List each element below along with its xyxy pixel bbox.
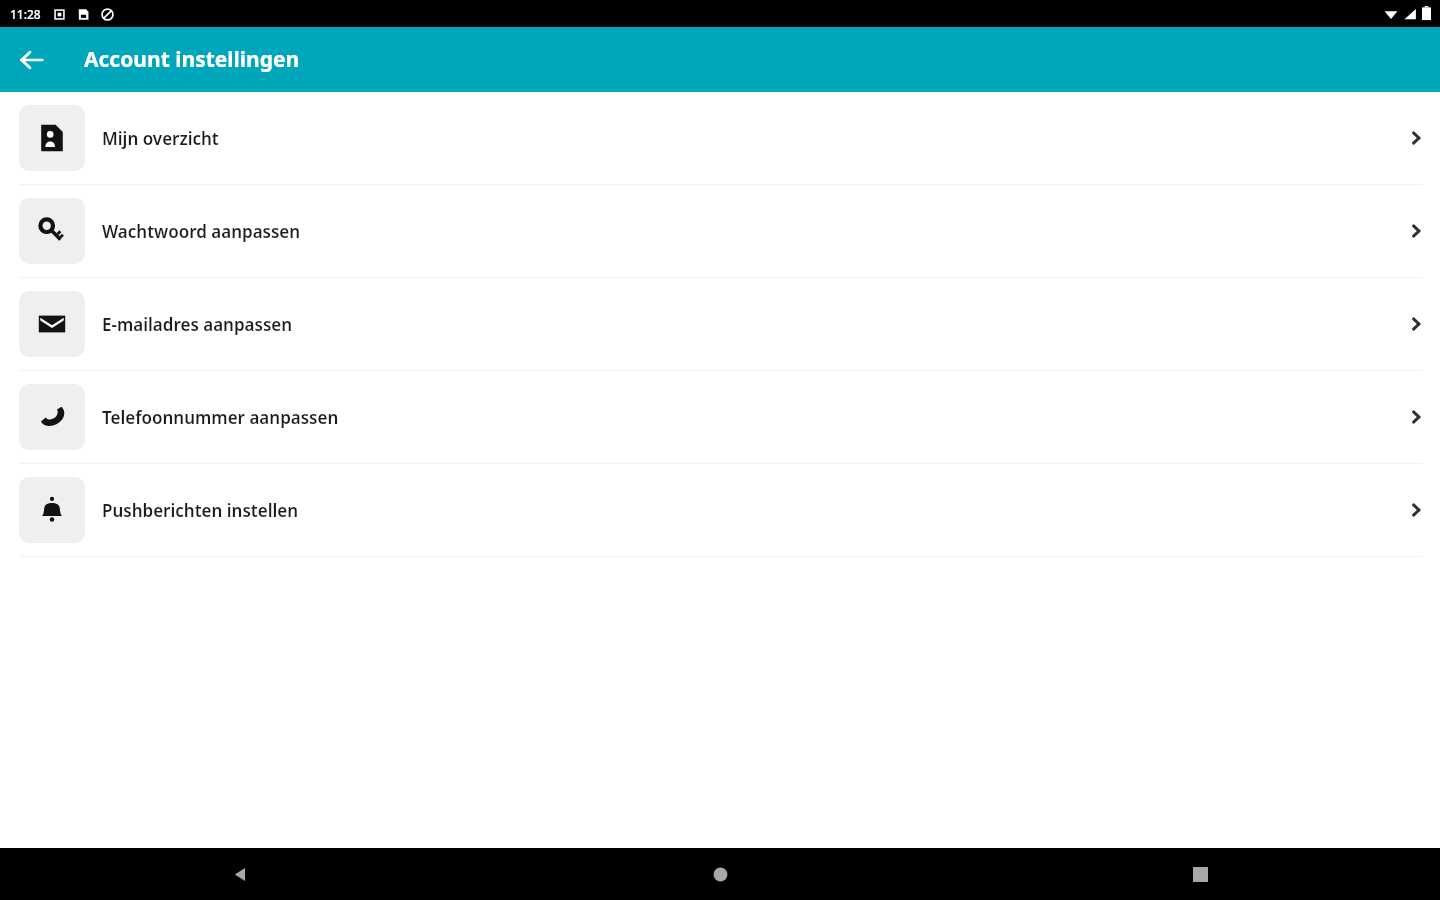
staticText: Pushberichten instellen [102, 499, 299, 522]
button[interactable]: Home [480, 848, 960, 900]
staticText: Account instellingen [84, 45, 300, 74]
staticText: Mijn overzicht [102, 127, 219, 150]
staticText: Telefoonnummer aanpassen [102, 406, 339, 429]
staticText: E-mailadres aanpassen [102, 313, 293, 336]
button[interactable]: Telefoonnummer aanpassen [0, 371, 1440, 463]
button[interactable]: Pushberichten instellen [0, 464, 1440, 556]
button[interactable]: Terug [0, 848, 480, 900]
button[interactable]: E-mailadres aanpassen [0, 278, 1440, 370]
button[interactable]: Mijn overzicht [0, 92, 1440, 184]
staticText: 11:28 [10, 6, 41, 22]
button[interactable]: Terug [8, 36, 56, 84]
staticText: Wachtwoord aanpassen [102, 220, 301, 243]
button[interactable]: Recente apps [960, 848, 1440, 900]
button[interactable]: Wachtwoord aanpassen [0, 185, 1440, 277]
